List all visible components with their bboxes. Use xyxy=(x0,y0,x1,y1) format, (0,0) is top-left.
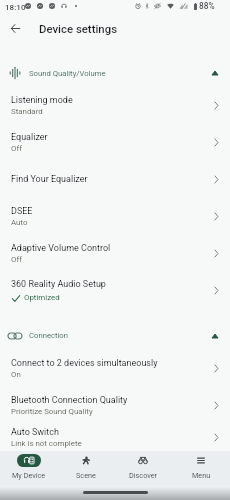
staticText: Sound Quality/Volume xyxy=(29,69,106,78)
staticText: Auto Switch xyxy=(11,427,59,438)
staticText: Link is not complete xyxy=(11,439,82,448)
button[interactable]: Listening mode xyxy=(0,87,230,124)
button[interactable]: Bluetooth Connection Quality xyxy=(0,387,230,424)
button[interactable]: DSEE xyxy=(0,198,230,235)
staticText: Optimized xyxy=(24,293,60,302)
staticText: Scene xyxy=(76,471,96,480)
staticText: On xyxy=(11,370,21,379)
button[interactable]: Connect to 2 devices simultaneously xyxy=(0,350,230,387)
button[interactable]: Equalizer xyxy=(0,124,230,161)
button[interactable]: Sound Quality/Volume xyxy=(0,58,230,87)
staticText: Off xyxy=(11,144,22,153)
staticText: My Device xyxy=(12,471,46,480)
button[interactable]: Adaptive Volume Control xyxy=(0,235,230,272)
staticText: Prioritize Sound Quality xyxy=(11,407,93,416)
button[interactable]: Discover xyxy=(114,451,172,485)
staticText: Device settings xyxy=(39,22,118,35)
staticText: DSEE xyxy=(11,206,33,217)
staticText: Connect to 2 devices simultaneously xyxy=(11,358,158,369)
staticText: 360 Reality Audio Setup xyxy=(11,279,106,290)
staticText: Adaptive Volume Control xyxy=(11,243,111,254)
button[interactable]: Find Your Equalizer xyxy=(0,161,230,198)
button[interactable]: 360 Reality Audio Setup xyxy=(0,272,230,309)
button[interactable]: Menu xyxy=(172,451,230,485)
staticText: Listening mode xyxy=(11,95,73,106)
staticText: Menu xyxy=(192,471,211,480)
button[interactable]: Auto Switch xyxy=(0,424,230,451)
staticText: Equalizer xyxy=(11,132,48,143)
staticText: Connection xyxy=(29,331,68,340)
staticText: Bluetooth Connection Quality xyxy=(11,395,128,406)
button[interactable]: Connection xyxy=(0,321,230,350)
staticText: 88% xyxy=(199,1,215,11)
button[interactable]: Back xyxy=(1,15,29,41)
staticText: Standard xyxy=(11,107,43,116)
staticText: Auto xyxy=(11,218,28,227)
staticText: Off xyxy=(11,255,22,264)
button[interactable]: My Device xyxy=(0,451,57,485)
button[interactable]: Scene xyxy=(57,451,114,485)
staticText: Discover xyxy=(129,471,158,480)
staticText: 18:10 xyxy=(5,2,26,11)
staticText: Find Your Equalizer xyxy=(11,174,88,185)
